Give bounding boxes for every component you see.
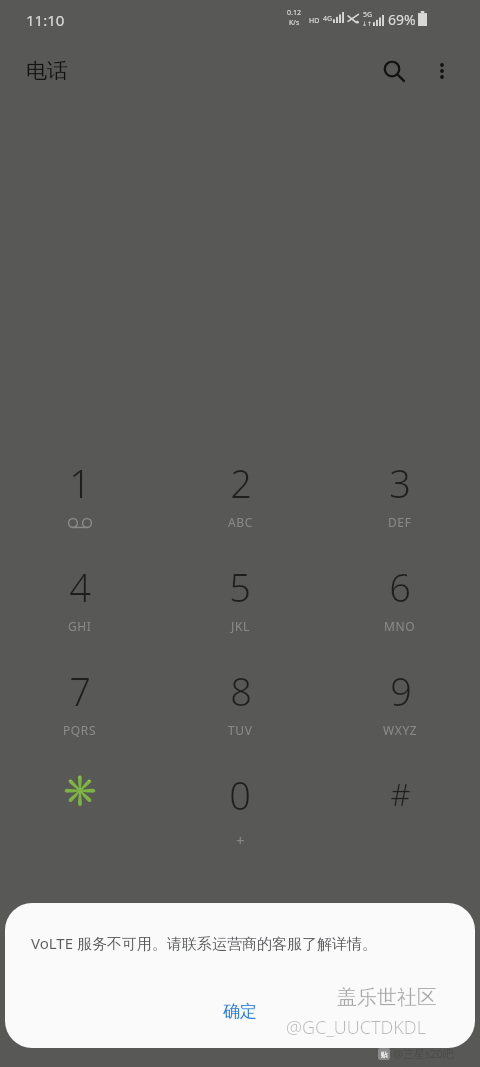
button[interactable]: 6 xyxy=(320,545,480,649)
staticText: @三星s20吧 xyxy=(393,1046,454,1061)
staticText: 9 xyxy=(390,665,412,717)
staticText: HD xyxy=(309,16,320,26)
staticText: 电话 xyxy=(26,58,68,84)
staticText: ABC xyxy=(228,514,253,530)
button[interactable]: 7 xyxy=(0,649,160,753)
staticText: 11:10 xyxy=(26,10,65,30)
staticText: JKL xyxy=(231,618,250,634)
staticText: PQRS xyxy=(63,722,97,738)
staticText: TUV xyxy=(228,722,253,738)
staticText: 7 xyxy=(69,665,91,717)
staticText: 确定 xyxy=(223,1001,257,1022)
staticText: DEF xyxy=(388,514,412,530)
staticText: 5 xyxy=(229,561,251,613)
staticText: K/s xyxy=(289,18,300,28)
staticText: ✳ xyxy=(61,773,99,808)
staticText: ↓↑ xyxy=(362,20,373,27)
button[interactable]: ✳ xyxy=(0,753,160,857)
staticText: 6 xyxy=(389,561,411,613)
button[interactable]: 确定 xyxy=(197,995,283,1028)
staticText: + xyxy=(236,830,245,850)
staticText: 1 xyxy=(69,457,91,509)
button[interactable]: 3 xyxy=(320,441,480,545)
button[interactable]: # xyxy=(320,753,480,857)
staticText: WXYZ xyxy=(383,722,418,738)
button[interactable]: 2 xyxy=(160,441,320,545)
staticText: 0 xyxy=(229,769,251,821)
staticText: 贴 xyxy=(381,1050,388,1059)
button[interactable]: 4 xyxy=(0,545,160,649)
staticText: GHI xyxy=(68,618,92,634)
staticText: # xyxy=(390,773,411,815)
staticText: 5G xyxy=(363,10,373,20)
button[interactable]: 9 xyxy=(320,649,480,753)
button[interactable]: 8 xyxy=(160,649,320,753)
staticText: 8 xyxy=(230,665,252,717)
staticText: 69% xyxy=(388,10,416,29)
staticText: 0.12 xyxy=(287,8,301,18)
staticText: 4 xyxy=(69,561,91,613)
staticText: @GC_UUCTDKDL xyxy=(286,1015,426,1040)
staticText: 3 xyxy=(389,457,411,509)
button[interactable]: 1 xyxy=(0,441,160,545)
staticText: 2 xyxy=(230,457,252,509)
staticText: MNO xyxy=(384,618,416,634)
button[interactable]: Search xyxy=(370,47,418,95)
staticText: 盖乐世社区 xyxy=(337,985,437,1010)
staticText: 4G xyxy=(323,14,333,24)
button[interactable]: 5 xyxy=(160,545,320,649)
staticText: VoLTE 服务不可用。请联系运营商的客服了解详情。 xyxy=(31,933,475,953)
button[interactable]: More options xyxy=(418,47,466,95)
button[interactable]: 0 xyxy=(160,753,320,857)
